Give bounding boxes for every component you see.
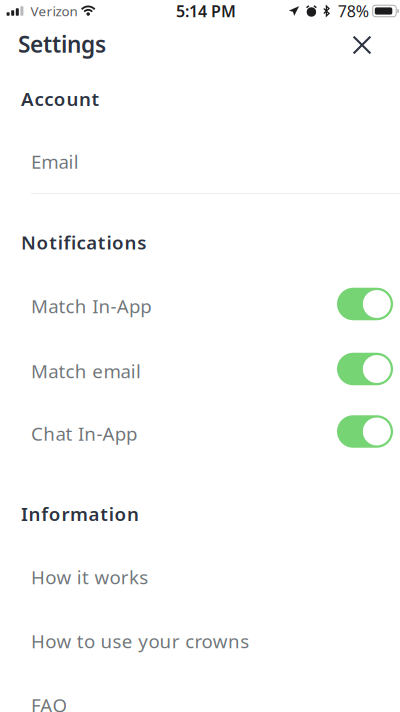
- staticText: Match In-App: [31, 294, 151, 318]
- staticText: Notifications: [21, 230, 146, 255]
- button[interactable]: FAQ: [0, 0, 400, 712]
- staticText: Verizon: [30, 2, 77, 20]
- staticText: Account: [21, 86, 100, 111]
- staticText: 78%: [338, 0, 369, 22]
- staticText: Email: [31, 149, 79, 174]
- button[interactable]: Chat In-App: [0, 0, 400, 712]
- staticText: 5:14 PM: [176, 0, 236, 22]
- button[interactable]: How it works: [0, 0, 400, 712]
- staticText: How to use your crowns: [31, 629, 249, 653]
- button[interactable]: Match In-App: [0, 0, 400, 712]
- button[interactable]: Email: [0, 0, 400, 712]
- staticText: FAQ: [31, 693, 67, 712]
- button[interactable]: How to use your crowns: [0, 0, 400, 712]
- staticText: Settings: [18, 29, 106, 59]
- staticText: How it works: [31, 565, 148, 589]
- staticText: Information: [21, 501, 139, 526]
- button[interactable]: Close: [0, 0, 400, 712]
- staticText: Chat In-App: [31, 421, 137, 446]
- staticText: Match email: [31, 359, 141, 383]
- button[interactable]: Match email: [0, 0, 400, 712]
